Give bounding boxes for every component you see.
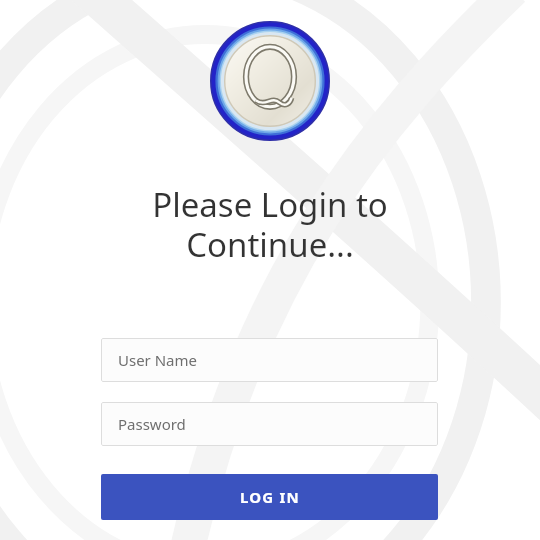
button[interactable]: LOG IN: [101, 474, 438, 520]
button[interactable]: User Name: [101, 338, 438, 382]
staticText: Password: [118, 414, 186, 434]
other: App logo: [210, 21, 330, 141]
staticText: User Name: [118, 350, 198, 370]
staticText: LOG IN: [240, 487, 300, 507]
button[interactable]: Password: [101, 402, 438, 446]
staticText: Please Login to Continue...: [152, 182, 388, 266]
